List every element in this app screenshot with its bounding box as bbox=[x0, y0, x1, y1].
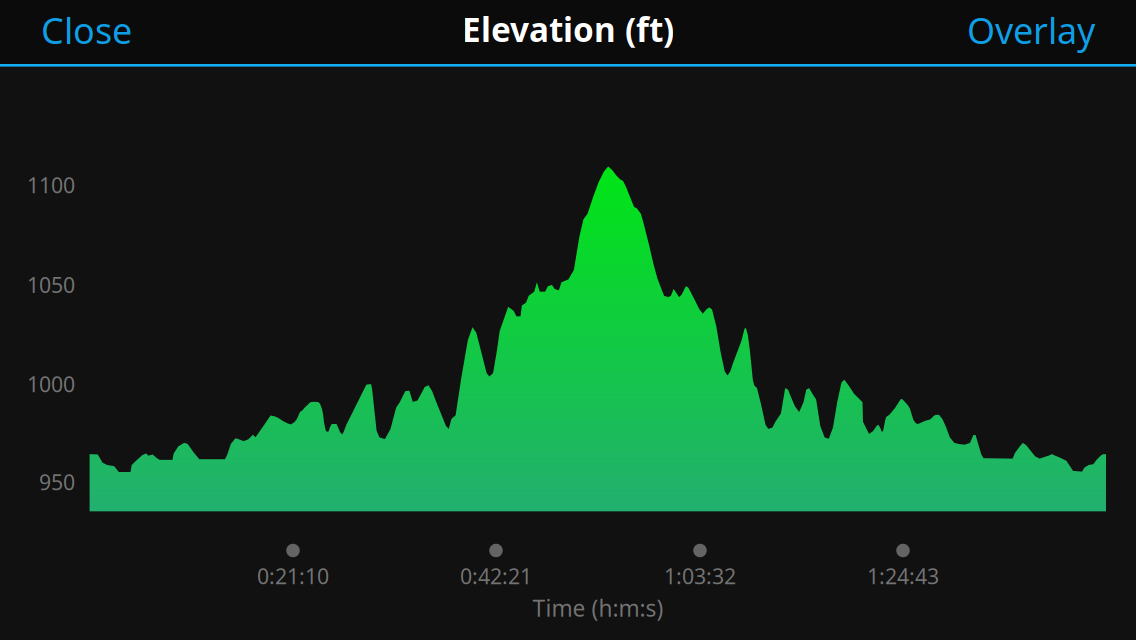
staticText: 1100 bbox=[27, 171, 75, 199]
staticText: 1050 bbox=[27, 270, 75, 299]
button[interactable]: Overlay bbox=[929, 0, 1095, 62]
staticText: Elevation (ft) bbox=[462, 7, 674, 51]
staticText: Time (h:m:s) bbox=[532, 593, 663, 623]
staticText: 1:03:32 bbox=[664, 562, 736, 590]
staticText: Overlay bbox=[967, 6, 1095, 54]
staticText: 950 bbox=[39, 468, 75, 496]
staticText: Close bbox=[41, 6, 132, 54]
staticText: 0:42:21 bbox=[460, 562, 532, 590]
button[interactable]: Close bbox=[41, 0, 169, 62]
staticText: 0:21:10 bbox=[257, 562, 329, 590]
staticText: 1000 bbox=[27, 370, 75, 398]
staticText: 1:24:43 bbox=[867, 562, 939, 590]
